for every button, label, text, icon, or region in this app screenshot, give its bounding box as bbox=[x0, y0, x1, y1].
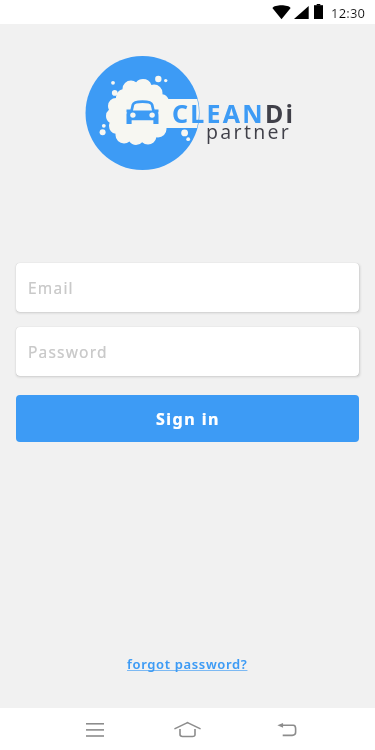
staticText: forgot password? bbox=[127, 655, 248, 673]
staticText: 12:30 bbox=[331, 4, 366, 22]
staticText: Password bbox=[28, 341, 108, 362]
button[interactable]: Email bbox=[16, 263, 359, 312]
button[interactable]: Password bbox=[16, 327, 359, 376]
button[interactable]: Recents bbox=[76, 709, 113, 749]
staticText: Di bbox=[265, 96, 296, 130]
staticText: Email bbox=[28, 277, 74, 298]
button[interactable]: Home bbox=[169, 709, 206, 749]
staticText: Sign in bbox=[156, 408, 220, 430]
staticText: partner bbox=[206, 118, 292, 145]
staticText: CLEAN bbox=[172, 96, 265, 130]
button[interactable]: forgot password? bbox=[115, 651, 260, 677]
button[interactable]: Sign in bbox=[16, 395, 359, 442]
button[interactable]: Back bbox=[268, 709, 305, 749]
